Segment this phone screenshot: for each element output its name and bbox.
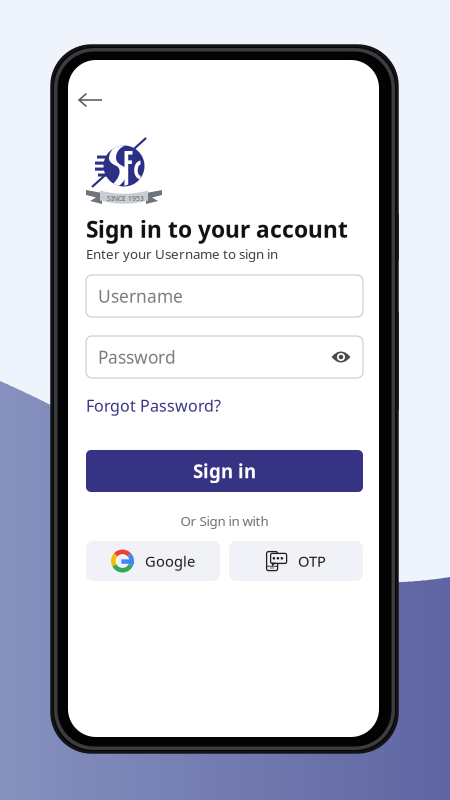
button[interactable]: Forgot Password?	[84, 391, 223, 420]
staticText: Sign in	[193, 459, 256, 483]
button[interactable]: Back	[68, 84, 113, 116]
staticText: Username	[98, 284, 183, 307]
staticText: Google	[145, 551, 195, 571]
staticText: OTP	[298, 551, 326, 571]
staticText: SINCE 1953	[107, 194, 144, 203]
button[interactable]: Sign in	[86, 450, 363, 492]
button[interactable]: Google	[86, 541, 220, 581]
staticText: Enter your Username to sign in	[86, 245, 278, 263]
staticText: Sign in to your account	[86, 214, 348, 244]
staticText: Password	[98, 345, 176, 368]
staticText: Or Sign in with	[180, 512, 268, 530]
button[interactable]: OTP	[229, 541, 363, 581]
staticText: Forgot Password?	[86, 395, 221, 416]
